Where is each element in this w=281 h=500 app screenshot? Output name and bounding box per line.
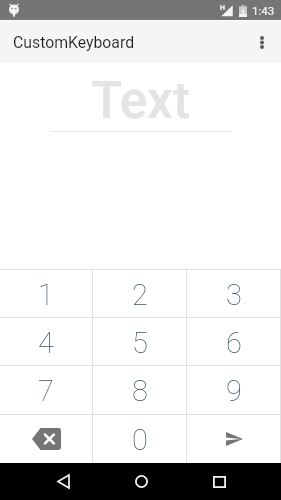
staticText: 8 [132, 374, 148, 408]
staticText: 5 [132, 326, 148, 360]
button[interactable]: More options [243, 21, 281, 63]
button[interactable]: Back [41, 463, 85, 500]
button[interactable]: 0 [93, 415, 186, 463]
button[interactable]: 2 [93, 270, 186, 317]
staticText: CustomKeyboard [13, 33, 135, 52]
staticText: 1 [38, 278, 54, 312]
staticText: 6 [226, 326, 242, 360]
button[interactable]: Recents [197, 463, 241, 500]
button[interactable]: 7 [0, 366, 92, 414]
button[interactable]: 8 [93, 366, 186, 414]
staticText: 0 [132, 423, 148, 457]
button[interactable]: 3 [187, 270, 280, 317]
button[interactable]: Backspace [0, 415, 92, 463]
staticText: 7 [38, 374, 54, 408]
button[interactable]: 9 [187, 366, 280, 414]
staticText: 3 [226, 278, 242, 312]
button[interactable]: 5 [93, 318, 186, 365]
button[interactable]: Send [187, 415, 280, 463]
staticText: 1:43 [252, 4, 275, 17]
button[interactable]: 4 [0, 318, 92, 365]
staticText: 9 [226, 374, 242, 408]
staticText: 4 [38, 326, 54, 360]
button[interactable]: 6 [187, 318, 280, 365]
staticText: 2 [132, 278, 148, 312]
button[interactable]: 1 [0, 270, 92, 317]
staticText: H [220, 4, 225, 12]
staticText: Text [0, 71, 281, 131]
button[interactable]: Home [119, 463, 163, 500]
